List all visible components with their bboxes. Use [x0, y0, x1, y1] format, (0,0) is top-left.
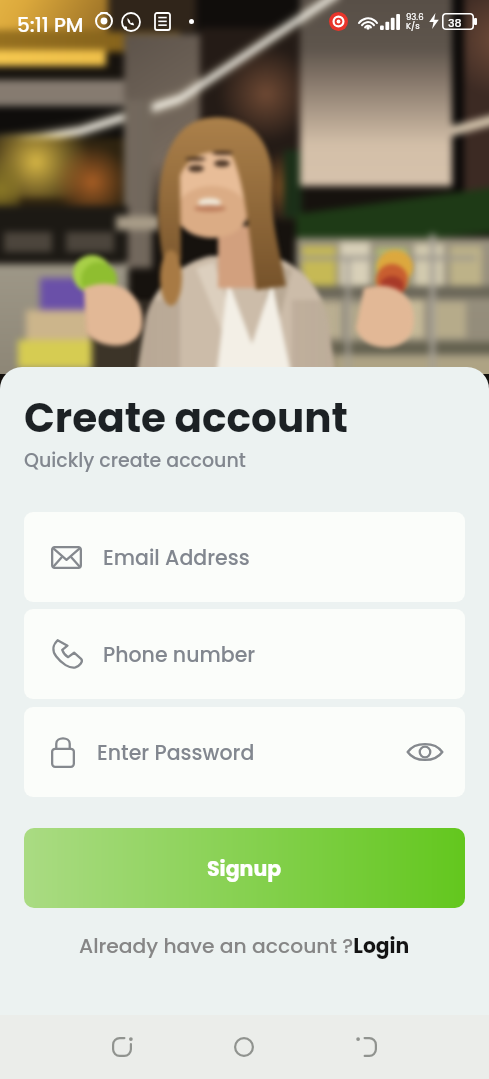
button[interactable]: Show password	[402, 729, 448, 775]
staticText: 38	[448, 15, 462, 30]
button[interactable]: Phone number	[24, 609, 465, 699]
staticText: 93.6	[406, 11, 424, 23]
button[interactable]: Signup	[24, 828, 465, 908]
staticText: Email Address	[103, 543, 250, 572]
staticText: K/s	[406, 20, 420, 32]
button[interactable]: Recent apps	[332, 1027, 402, 1067]
button[interactable]: Already have an account ?Login	[79, 932, 410, 960]
button[interactable]: Back	[87, 1027, 157, 1067]
button[interactable]: Home	[209, 1027, 279, 1067]
button[interactable]: Email Address	[24, 512, 465, 602]
staticText: Enter Password	[97, 738, 255, 767]
staticText: Create account	[24, 389, 348, 446]
staticText: Signup	[207, 854, 282, 883]
staticText: 5:11 PM	[17, 11, 84, 39]
staticText: Quickly create account	[24, 447, 246, 474]
button[interactable]: Enter Password	[24, 707, 465, 797]
staticText: Phone number	[103, 640, 256, 669]
